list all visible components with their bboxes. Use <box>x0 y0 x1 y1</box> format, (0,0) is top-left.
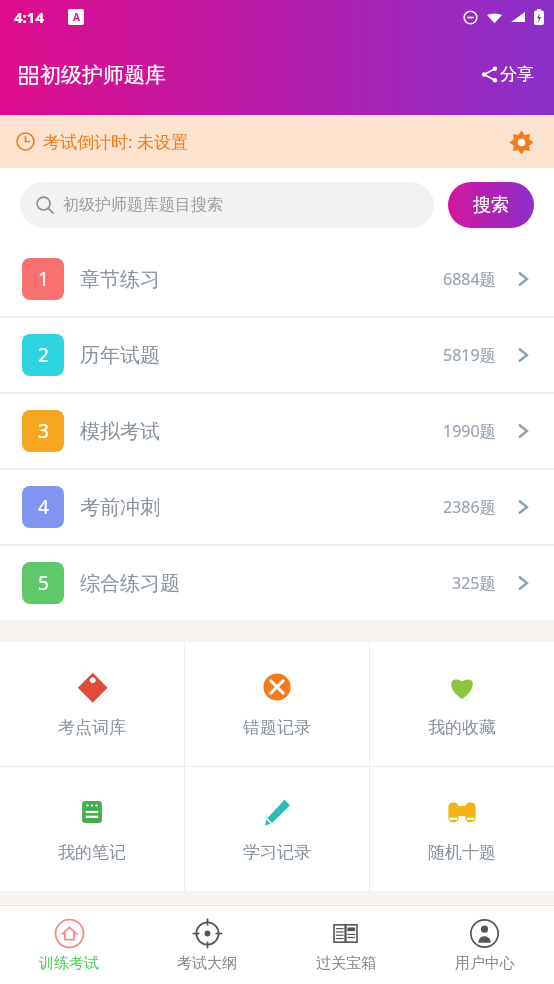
staticText: 初级护师题库 <box>40 62 166 88</box>
staticText: 学习记录 <box>243 842 311 863</box>
staticText: 4 <box>38 494 49 520</box>
button[interactable]: 设置 <box>504 125 538 159</box>
staticText: 历年试题 <box>80 343 160 368</box>
staticText: 搜索 <box>473 194 509 217</box>
button[interactable]: 我的收藏 <box>370 642 554 766</box>
staticText: 综合练习题 <box>80 571 180 596</box>
button[interactable]: 考试倒计时: 未设置 <box>0 115 554 168</box>
staticText: 2386题 <box>443 496 496 518</box>
staticText: 考点词库 <box>58 717 126 738</box>
staticText: 考试倒计时: 未设置 <box>43 130 188 153</box>
staticText: 我的收藏 <box>428 717 496 738</box>
staticText: 分享 <box>500 64 534 85</box>
staticText: 章节练习 <box>80 267 160 292</box>
button[interactable]: 3 <box>0 394 554 468</box>
staticText: 过关宝箱 <box>316 954 376 973</box>
staticText: 5 <box>38 570 49 596</box>
button[interactable]: 用户中心 <box>415 906 554 984</box>
staticText: 2 <box>38 342 49 368</box>
staticText: 4:14 <box>14 7 44 27</box>
button[interactable]: 5 <box>0 546 554 620</box>
button[interactable]: 错题记录 <box>185 642 369 766</box>
staticText: 用户中心 <box>455 954 515 973</box>
staticText: 3 <box>38 418 49 444</box>
button[interactable]: 搜索 <box>448 182 534 228</box>
staticText: A <box>73 10 80 24</box>
staticText: 初级护师题库题目搜索 <box>63 195 223 215</box>
staticText: 1990题 <box>443 420 496 442</box>
staticText: 随机十题 <box>428 842 496 863</box>
button[interactable]: 2 <box>0 318 554 392</box>
button[interactable]: 我的笔记 <box>0 767 184 891</box>
button[interactable]: 过关宝箱 <box>276 906 415 984</box>
staticText: 1 <box>38 266 49 292</box>
button[interactable]: 分享 <box>477 58 538 91</box>
staticText: 错题记录 <box>243 717 311 738</box>
staticText: 我的笔记 <box>58 842 126 863</box>
button[interactable]: 1 <box>0 242 554 316</box>
staticText: 6884题 <box>443 268 496 290</box>
button[interactable]: 初级护师题库题目搜索 <box>20 182 434 228</box>
staticText: 考前冲刺 <box>80 495 160 520</box>
staticText: 考试大纲 <box>177 954 237 973</box>
button[interactable]: 随机十题 <box>370 767 554 891</box>
button[interactable]: 学习记录 <box>185 767 369 891</box>
button[interactable]: 考点词库 <box>0 642 184 766</box>
staticText: 训练考试 <box>39 954 99 973</box>
button[interactable]: 考试大纲 <box>138 906 276 984</box>
staticText: 模拟考试 <box>80 419 160 444</box>
button[interactable]: 训练考试 <box>0 906 138 984</box>
staticText: 325题 <box>452 572 496 594</box>
button[interactable]: 4 <box>0 470 554 544</box>
staticText: 5819题 <box>443 344 496 366</box>
